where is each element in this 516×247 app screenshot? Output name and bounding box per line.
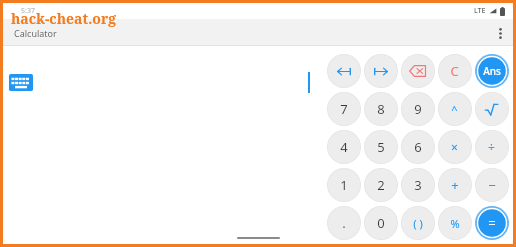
staticText: Calculator — [14, 27, 57, 39]
staticText: % — [450, 216, 460, 231]
button[interactable]: ( ) — [399, 204, 436, 242]
staticText: 9 — [414, 100, 422, 118]
button[interactable]: Show keyboard — [8, 72, 34, 92]
button[interactable]: 3 — [399, 166, 436, 204]
button[interactable]: 1 — [325, 166, 362, 204]
staticText: 8 — [377, 100, 385, 118]
staticText: + — [451, 176, 459, 194]
staticText: C — [450, 62, 459, 80]
button[interactable]: Backspace — [399, 52, 436, 90]
staticText: . — [342, 214, 346, 232]
button[interactable]: 7 — [325, 90, 362, 128]
button[interactable]: 4 — [325, 128, 362, 166]
staticText: 7 — [340, 100, 348, 118]
button[interactable]: − — [473, 166, 510, 204]
button[interactable]: % — [436, 204, 473, 242]
button[interactable]: = — [473, 204, 510, 242]
button[interactable]: Move cursor right — [362, 52, 399, 90]
staticText: 4 — [340, 138, 348, 156]
button[interactable]: Ans — [473, 52, 510, 90]
button[interactable]: . — [325, 204, 362, 242]
button[interactable]: 8 — [362, 90, 399, 128]
button[interactable]: 6 — [399, 128, 436, 166]
button[interactable]: 9 — [399, 90, 436, 128]
button[interactable]: Square root — [473, 90, 510, 128]
button[interactable]: ^ — [436, 90, 473, 128]
button[interactable]: C — [436, 52, 473, 90]
staticText: 0 — [377, 214, 385, 232]
button[interactable]: ÷ — [473, 128, 510, 166]
button[interactable]: 2 — [362, 166, 399, 204]
button[interactable]: 5 — [362, 128, 399, 166]
staticText: 5 — [377, 138, 385, 156]
button[interactable]: + — [436, 166, 473, 204]
staticText: 5:37 — [21, 6, 35, 16]
button[interactable]: × — [436, 128, 473, 166]
staticText: 1 — [340, 176, 348, 194]
staticText: ( ) — [413, 216, 423, 231]
staticText: 2 — [377, 176, 385, 194]
staticText: 3 — [414, 176, 422, 194]
staticText: LTE — [474, 6, 486, 16]
staticText: ÷ — [488, 139, 495, 155]
staticText: = — [488, 214, 496, 232]
button[interactable]: 0 — [362, 204, 399, 242]
button[interactable]: Move cursor left — [325, 52, 362, 90]
staticText: Ans — [483, 64, 501, 78]
staticText: − — [488, 176, 496, 194]
staticText: hack-cheat.org — [11, 9, 117, 28]
staticText: × — [451, 139, 458, 155]
staticText: 6 — [414, 138, 422, 156]
staticText: ^ — [451, 102, 458, 117]
button[interactable]: More options — [487, 20, 513, 46]
